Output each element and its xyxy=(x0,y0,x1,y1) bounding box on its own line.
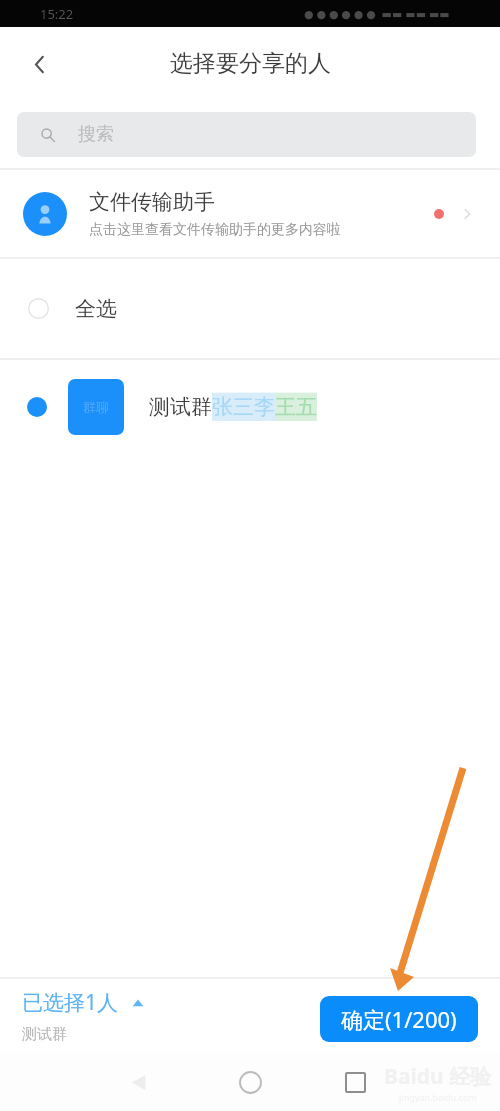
staticText: 文件传输助手 xyxy=(89,189,215,215)
button[interactable]: 确定(1/200) xyxy=(320,996,478,1042)
staticText: 点击这里查看文件传输助手的更多内容啦 xyxy=(89,221,341,239)
staticText: 15:22 xyxy=(40,5,74,23)
button[interactable]: Recents xyxy=(335,1062,375,1102)
staticText: 测试群 xyxy=(22,1025,67,1044)
button[interactable]: 群聊 xyxy=(0,360,500,454)
staticText: Baidu 经验 xyxy=(384,1062,492,1091)
staticText: jingyan.baidu.com xyxy=(399,1091,477,1103)
button[interactable]: Home xyxy=(228,1060,272,1104)
button[interactable]: 文件传输助手 xyxy=(0,170,500,257)
staticText: 确定(1/200) xyxy=(341,1004,457,1034)
staticText: 群聊 xyxy=(83,399,109,415)
staticText: 全选 xyxy=(75,296,117,322)
button[interactable]: Back xyxy=(118,1062,158,1102)
staticText: 测试群张三李王五 xyxy=(149,394,317,420)
button[interactable]: 全选 xyxy=(0,259,500,358)
button[interactable]: 已选择1人 xyxy=(22,988,144,1044)
staticText: 已选择1人 xyxy=(22,988,119,1017)
staticText: 搜索 xyxy=(78,123,114,146)
staticText: ● ● ● ● ● ● ▬▬ ▬▬ ▬▬ xyxy=(304,6,450,21)
button[interactable]: Back xyxy=(18,43,60,85)
button[interactable]: 搜索 xyxy=(17,112,476,157)
staticText: 选择要分享的人 xyxy=(170,49,331,78)
